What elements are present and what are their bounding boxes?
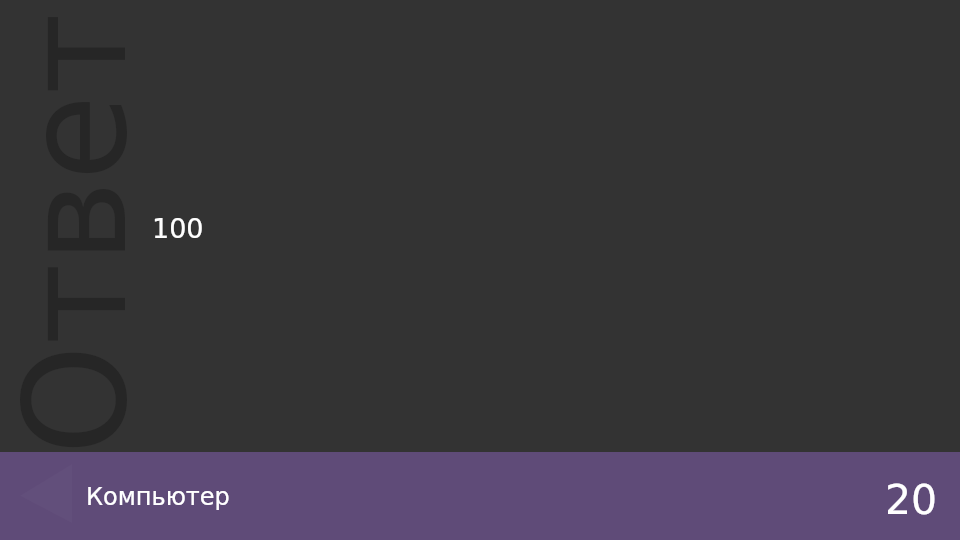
staticText: Компьютер (86, 483, 230, 511)
staticText: Ответ (0, 13, 158, 455)
button[interactable]: 20 (873, 452, 950, 540)
staticText: 20 (885, 476, 938, 524)
button[interactable]: Компьютер (78, 452, 238, 540)
staticText: 100 (152, 213, 204, 244)
